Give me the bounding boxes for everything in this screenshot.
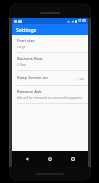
staticText: 2 Row xyxy=(17,63,27,67)
button[interactable]: Keep Screen on xyxy=(12,71,88,85)
staticText: Keep Screen on xyxy=(17,75,76,81)
staticText: Font size xyxy=(17,38,35,44)
staticText: Ads will be removed on successful paymen… xyxy=(17,96,82,100)
staticText: Settings xyxy=(16,26,37,33)
staticText: Buttons Row xyxy=(17,56,43,62)
staticText: Large xyxy=(17,45,26,49)
staticText: 11:05 xyxy=(78,19,87,23)
button[interactable]: Back xyxy=(19,151,35,167)
button[interactable]: Remove Ads xyxy=(12,86,88,103)
button[interactable]: Home xyxy=(42,151,58,167)
other: Keep Screen on toggle xyxy=(76,76,84,81)
staticText: Remove Ads xyxy=(17,89,42,95)
button[interactable]: Settings xyxy=(12,24,88,35)
button[interactable]: Recent apps xyxy=(65,151,81,167)
button[interactable]: Font size xyxy=(12,35,88,52)
button[interactable]: Buttons Row xyxy=(12,53,88,70)
